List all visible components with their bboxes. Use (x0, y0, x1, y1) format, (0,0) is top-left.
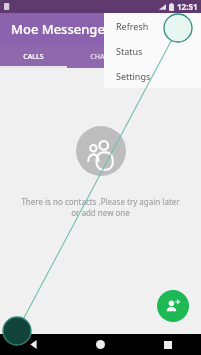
staticText: Status (116, 45, 143, 57)
button[interactable]: Status (104, 38, 201, 63)
staticText: CHATS (90, 52, 112, 62)
button[interactable]: CALLS (0, 45, 67, 68)
staticText: Settings (116, 70, 151, 82)
staticText: CALLS (23, 52, 44, 62)
staticText: There is no contacts .Please try again l… (18, 196, 183, 219)
button[interactable]: Settings (104, 63, 201, 88)
button[interactable]: Recent apps (134, 334, 201, 355)
button[interactable]: Refresh (104, 13, 201, 38)
button[interactable]: Back (0, 334, 67, 355)
button[interactable] (134, 45, 201, 68)
staticText: Refresh (116, 20, 149, 32)
staticText: 12:51 (177, 1, 198, 12)
button[interactable]: Add contact (157, 290, 189, 322)
staticText: Moe Messenger (11, 20, 111, 38)
button[interactable]: Home (67, 334, 134, 355)
button[interactable]: CHATS (67, 45, 134, 68)
